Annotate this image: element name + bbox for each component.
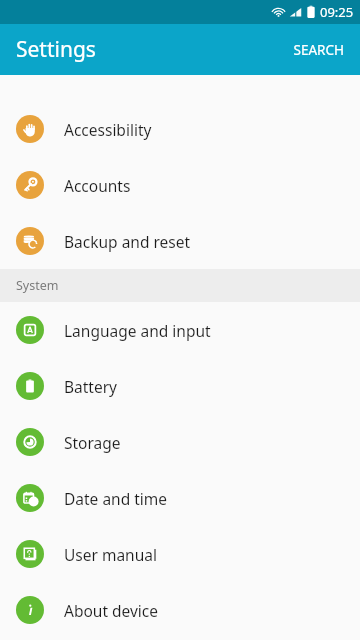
staticText: Easy mode: [64, 48, 143, 69]
staticText: Settings: [16, 35, 96, 64]
staticText: Battery: [64, 376, 118, 397]
button[interactable]: Accessibility: [0, 101, 360, 157]
staticText: Accessibility: [64, 119, 152, 140]
button[interactable]: Battery: [0, 358, 360, 414]
staticText: Date and time: [64, 488, 168, 509]
staticText: Accounts: [64, 175, 131, 196]
button[interactable]: Language and input: [0, 302, 360, 358]
staticText: SEARCH: [293, 41, 344, 59]
button[interactable]: About device: [0, 582, 360, 638]
button[interactable]: User manual: [0, 526, 360, 582]
button[interactable]: SEARCH: [277, 29, 360, 71]
staticText: Language and input: [64, 320, 211, 341]
staticText: Backup and reset: [64, 231, 191, 252]
button[interactable]: Accounts: [0, 157, 360, 213]
staticText: User manual: [64, 544, 157, 565]
staticText: 09:25: [320, 3, 354, 21]
staticText: Storage: [64, 432, 121, 453]
staticText: About device: [64, 600, 159, 621]
staticText: System: [16, 277, 59, 294]
button[interactable]: Date and time: [0, 470, 360, 526]
button[interactable]: Storage: [0, 414, 360, 470]
button[interactable]: Backup and reset: [0, 213, 360, 269]
